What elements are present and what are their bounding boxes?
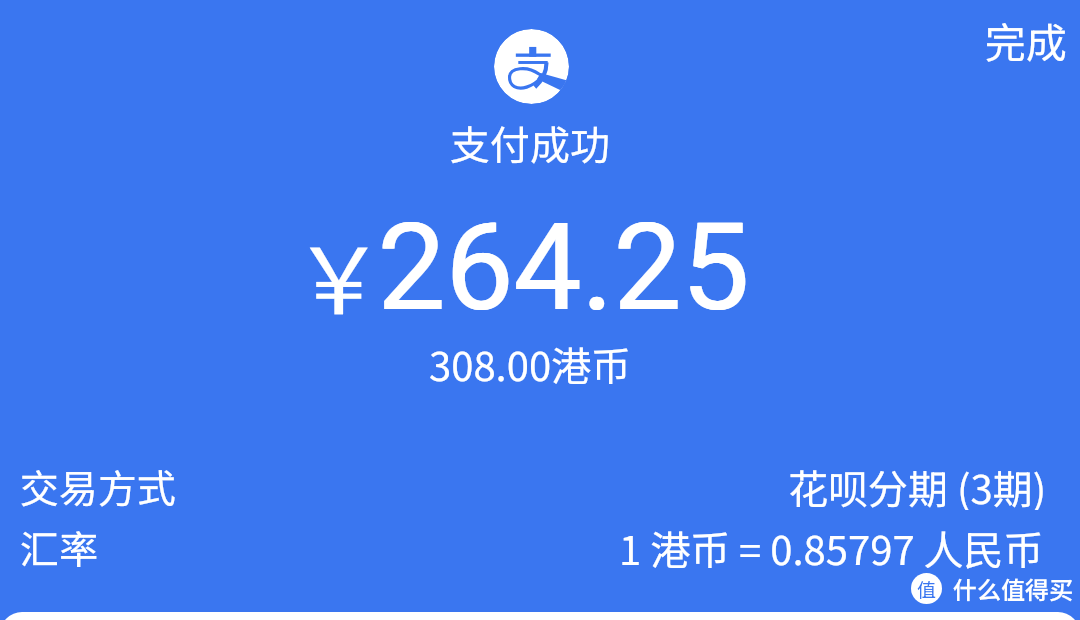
staticText: 什么值得买 [953, 571, 1073, 606]
staticText: 308.00港币 [429, 335, 632, 393]
staticText: 1 港币 = 0.85797 人民币 [619, 519, 1044, 571]
other: Alipay [494, 29, 569, 104]
staticText: ￥ [293, 207, 386, 340]
staticText: 264.25 [378, 197, 750, 339]
staticText: 汇率 [20, 519, 99, 571]
staticText: 完成 [985, 10, 1067, 69]
staticText: 支付成功 [450, 114, 610, 172]
staticText: 264.25 [377, 197, 749, 339]
button[interactable]: 汇率 [0, 509, 1080, 561]
staticText: 值 [917, 575, 937, 603]
staticText: 交易方式 [20, 458, 177, 510]
staticText: 花呗分期 (3期) [788, 458, 1047, 510]
button[interactable]: 交易方式 [0, 448, 1080, 500]
button[interactable]: 完成 [963, 0, 1080, 91]
